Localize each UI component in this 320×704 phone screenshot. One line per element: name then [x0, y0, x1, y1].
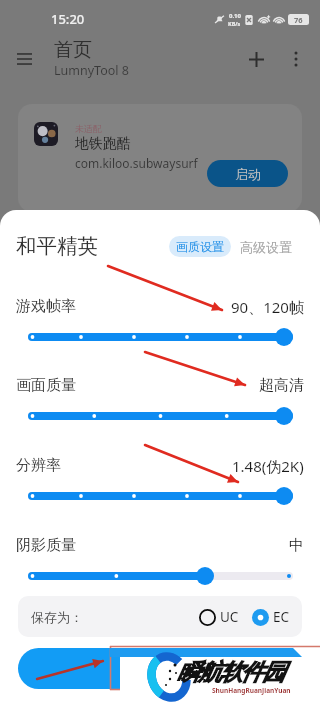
- button[interactable]: More options: [280, 43, 312, 75]
- staticText: ShunHangRuanJianYuan: [212, 686, 291, 695]
- staticText: UC: [220, 608, 239, 626]
- staticText: 瞬航软件园: [178, 658, 284, 687]
- staticText: com.kiloo.subwaysurf: [75, 155, 198, 171]
- staticText: 首页: [54, 38, 92, 62]
- button[interactable]: UC: [199, 608, 239, 626]
- button[interactable]: [28, 406, 293, 426]
- staticText: 保存为：: [31, 609, 83, 625]
- button[interactable]: [28, 566, 293, 586]
- staticText: 和平精英: [16, 233, 98, 259]
- staticText: 15:20: [51, 10, 85, 28]
- staticText: 启动: [235, 166, 261, 182]
- staticText: KB/s: [228, 20, 241, 27]
- button[interactable]: [28, 486, 293, 506]
- button[interactable]: 画质设置: [169, 236, 231, 257]
- staticText: 高级设置: [240, 239, 292, 255]
- staticText: 中: [289, 536, 304, 555]
- staticText: 超高清: [259, 376, 304, 395]
- staticText: 0.10: [229, 12, 241, 20]
- button[interactable]: [28, 327, 293, 347]
- button[interactable]: EC: [252, 608, 290, 626]
- staticText: 阴影质量: [16, 536, 76, 555]
- staticText: 76: [294, 15, 303, 25]
- button[interactable]: Add: [240, 43, 272, 75]
- staticText: 分辨率: [16, 456, 61, 475]
- button[interactable]: 未适配: [18, 104, 302, 212]
- staticText: LumnyTool 8: [54, 62, 129, 79]
- staticText: 地铁跑酷: [75, 135, 131, 153]
- staticText: 画质设置: [176, 239, 224, 254]
- staticText: 1.48(伪2K): [232, 456, 304, 476]
- button[interactable]: 高级设置: [237, 236, 295, 257]
- staticText: 未适配: [75, 123, 102, 134]
- button[interactable]: 启动: [207, 160, 288, 187]
- button[interactable]: Menu: [8, 43, 40, 75]
- staticText: 游戏帧率: [16, 297, 76, 316]
- button[interactable]: [18, 648, 302, 689]
- staticText: EC: [273, 608, 290, 626]
- staticText: 画面质量: [16, 376, 76, 395]
- staticText: 90、120帧: [231, 297, 304, 317]
